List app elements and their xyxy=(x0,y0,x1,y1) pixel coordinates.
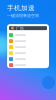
staticText: 广告 xyxy=(16,26,24,30)
button[interactable] xyxy=(7,32,49,38)
staticText: 一键清理释放空间 xyxy=(7,13,39,18)
button[interactable]: Network tools xyxy=(42,76,55,89)
button[interactable] xyxy=(7,44,49,50)
button[interactable] xyxy=(7,38,49,44)
staticText: 手机加速 xyxy=(7,4,35,12)
button[interactable]: 广告 xyxy=(9,26,47,30)
button[interactable] xyxy=(7,62,49,68)
button[interactable] xyxy=(7,50,49,56)
button[interactable] xyxy=(7,56,49,62)
